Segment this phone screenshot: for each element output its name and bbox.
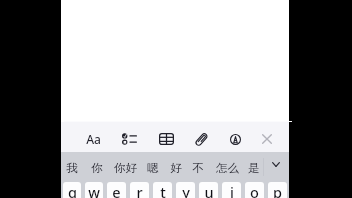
staticText: w: [88, 182, 100, 198]
button[interactable]: Attach file: [187, 122, 215, 152]
button[interactable]: Close keyboard: [253, 122, 281, 152]
staticText: 嗯: [147, 161, 159, 175]
button[interactable]: r: [130, 182, 149, 198]
button[interactable]: Text formatting: [79, 122, 107, 152]
staticText: 你好: [114, 161, 137, 175]
button[interactable]: 我: [61, 152, 83, 182]
button[interactable]: Insert table: [152, 122, 180, 152]
staticText: r: [136, 182, 143, 198]
button[interactable]: 你好: [110, 152, 140, 182]
button[interactable]: w: [85, 182, 103, 198]
staticText: 你: [91, 161, 103, 175]
button[interactable]: Markup: [221, 122, 249, 152]
staticText: Aa: [86, 131, 101, 147]
staticText: e: [112, 182, 121, 198]
button[interactable]: p: [268, 182, 287, 198]
button[interactable]: 怎么: [212, 152, 242, 182]
staticText: 好: [170, 161, 182, 175]
button[interactable]: Bulleted list: [115, 122, 143, 152]
staticText: 我: [66, 161, 78, 175]
staticText: i: [230, 182, 234, 198]
button[interactable]: 是: [243, 152, 265, 182]
button[interactable]: More suggestions: [263, 152, 289, 182]
staticText: q: [68, 182, 77, 198]
button[interactable]: q: [63, 182, 81, 198]
staticText: y: [182, 182, 190, 198]
button[interactable]: 嗯: [142, 152, 164, 182]
button[interactable]: i: [222, 182, 241, 198]
staticText: t: [160, 182, 166, 198]
staticText: o: [250, 182, 259, 198]
staticText: 怎么: [216, 161, 239, 175]
button[interactable]: o: [245, 182, 264, 198]
staticText: 不: [192, 161, 204, 175]
button[interactable]: y: [176, 182, 195, 198]
button[interactable]: 好: [165, 152, 187, 182]
button[interactable]: t: [153, 182, 172, 198]
staticText: u: [204, 182, 214, 198]
button[interactable]: e: [107, 182, 126, 198]
button[interactable]: 你: [86, 152, 108, 182]
button[interactable]: u: [199, 182, 218, 198]
staticText: p: [273, 182, 282, 198]
button[interactable]: 不: [187, 152, 209, 182]
staticText: 是: [248, 161, 260, 175]
